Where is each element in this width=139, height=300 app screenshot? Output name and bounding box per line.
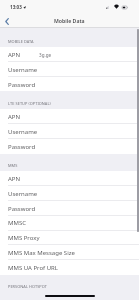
staticText: MMS xyxy=(8,163,18,168)
button[interactable]: APN xyxy=(0,171,139,186)
staticText: MMSC xyxy=(8,219,26,227)
button[interactable]: Password xyxy=(0,201,139,216)
staticText: PERSONAL HOTSPOT xyxy=(8,284,47,289)
staticText: Username xyxy=(8,190,38,198)
button[interactable]: Password xyxy=(0,139,139,154)
staticText: APN xyxy=(8,175,21,183)
button[interactable]: Username xyxy=(0,62,139,77)
staticText: LTE SETUP (OPTIONAL) xyxy=(8,101,51,106)
staticText: MMS UA Prof URL xyxy=(8,264,58,272)
staticText: 13:03 xyxy=(10,4,22,10)
staticText: Password xyxy=(8,205,36,213)
button[interactable]: MMS Proxy xyxy=(0,230,139,245)
button[interactable]: Username xyxy=(0,124,139,139)
button[interactable]: APN xyxy=(0,47,139,62)
staticText: Mobile Data xyxy=(54,17,85,24)
staticText: Username xyxy=(8,128,38,136)
button[interactable]: APN xyxy=(0,109,139,124)
staticText: MMS Proxy xyxy=(8,234,40,242)
staticText: Username xyxy=(8,66,38,74)
button[interactable]: MMS UA Prof URL xyxy=(0,260,139,275)
button[interactable]: MMS Max Message Size xyxy=(0,245,139,260)
staticText: APN xyxy=(8,51,21,59)
button[interactable]: Password xyxy=(0,77,139,92)
staticText: Password xyxy=(8,143,36,151)
button[interactable]: Back xyxy=(0,14,13,28)
staticText: 3g.ge xyxy=(39,52,52,58)
staticText: MOBILE DATA xyxy=(8,39,34,44)
staticText: APN xyxy=(8,113,21,121)
staticText: Password xyxy=(8,81,36,89)
staticText: MMS Max Message Size xyxy=(8,249,75,257)
button[interactable]: MMSC xyxy=(0,215,139,230)
button[interactable]: Username xyxy=(0,186,139,201)
